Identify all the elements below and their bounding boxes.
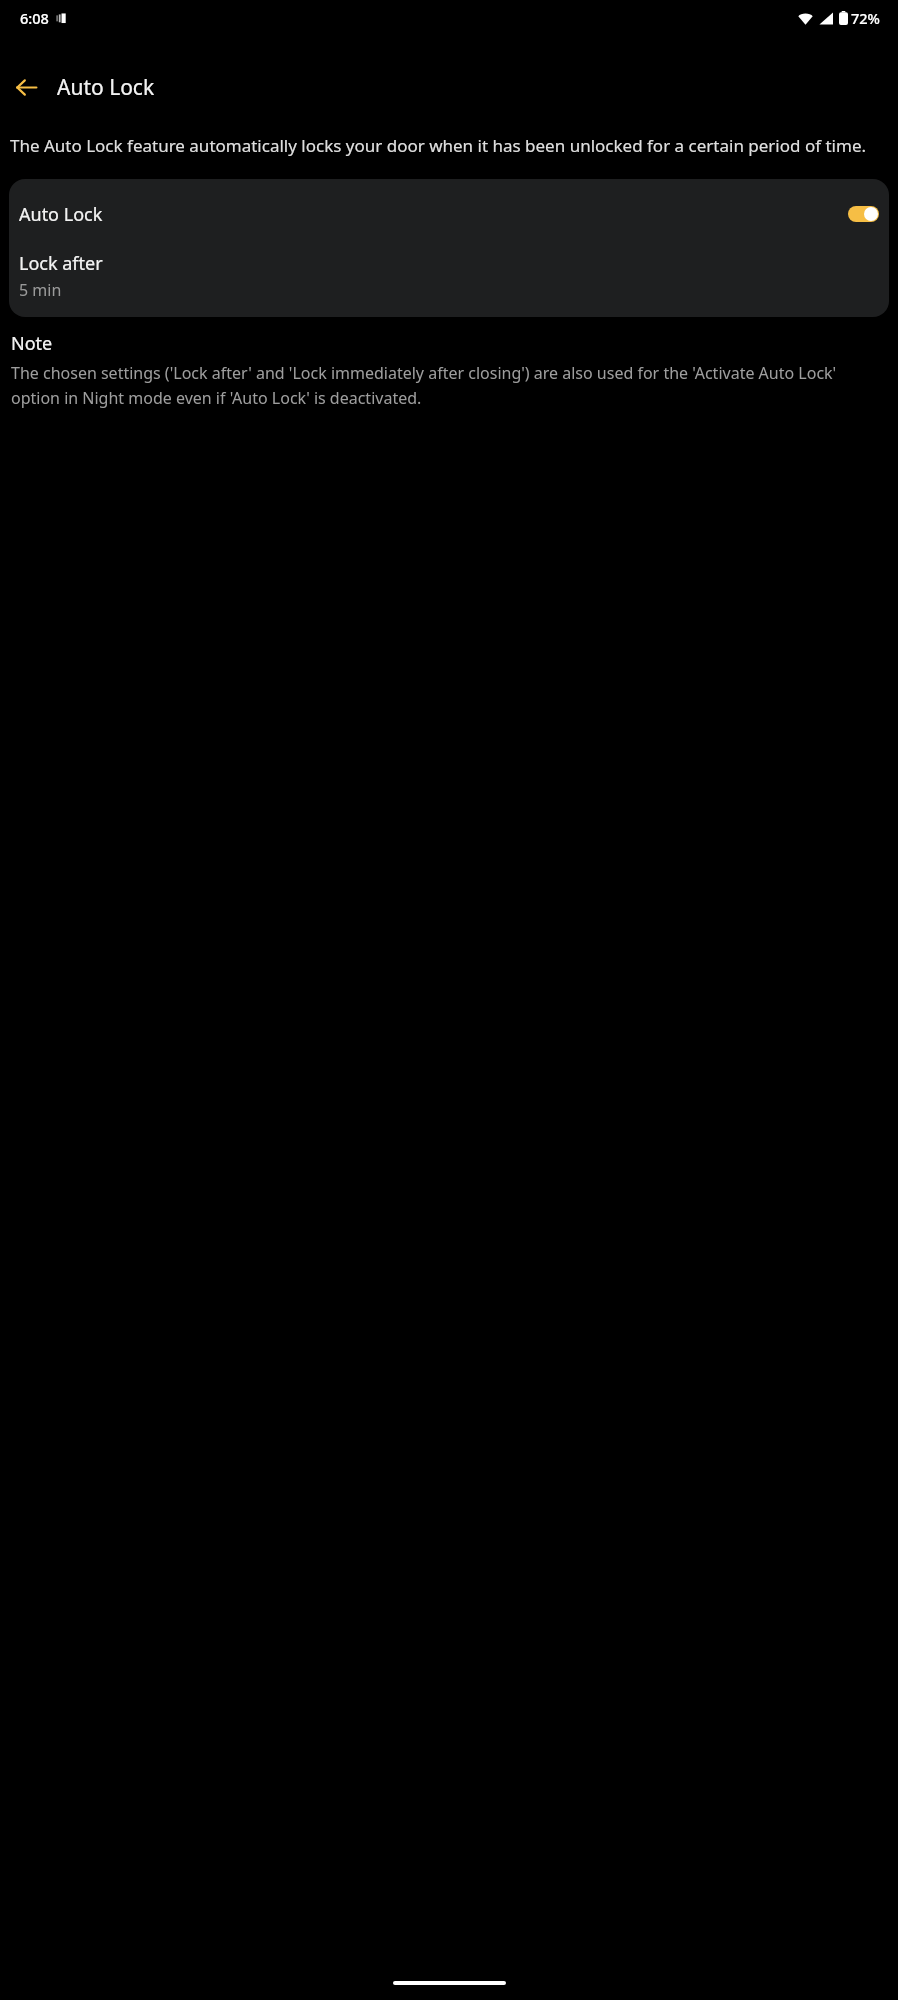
staticText: The chosen settings ('Lock after' and 'L… xyxy=(11,362,887,408)
button[interactable]: Back xyxy=(4,65,48,109)
staticText: Auto Lock xyxy=(19,202,848,227)
staticText: 72% xyxy=(851,8,880,28)
staticText: Auto Lock xyxy=(57,73,155,102)
staticText: 5 min xyxy=(19,279,62,301)
staticText: Lock after xyxy=(19,251,103,276)
staticText: Note xyxy=(11,331,53,356)
staticText: 6:08 xyxy=(20,8,49,28)
button[interactable]: Lock after xyxy=(9,249,889,317)
button[interactable]: Auto Lock toggle, on xyxy=(848,206,879,222)
staticText: The Auto Lock feature automatically lock… xyxy=(10,134,867,157)
button[interactable]: Auto Lock xyxy=(9,179,889,249)
